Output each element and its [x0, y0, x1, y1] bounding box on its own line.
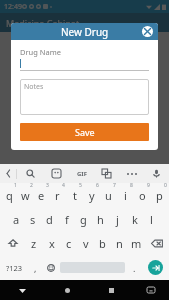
staticText: p	[156, 188, 163, 203]
staticText: 6	[96, 182, 99, 189]
staticText: v	[83, 236, 89, 251]
button[interactable]: n	[111, 231, 128, 255]
button[interactable]: p	[151, 183, 168, 207]
staticText: u	[105, 188, 112, 203]
button[interactable]: y	[83, 183, 100, 207]
staticText: 5	[79, 182, 82, 189]
staticText: New Drug	[61, 25, 109, 39]
button[interactable]: o	[134, 183, 151, 207]
button[interactable]: More options	[119, 164, 144, 183]
staticText: b	[99, 236, 106, 251]
button[interactable]: Translate	[94, 164, 119, 183]
button[interactable]: Close	[142, 26, 153, 37]
staticText: Save	[75, 126, 95, 138]
button[interactable]: Recents	[89, 280, 133, 300]
staticText: c	[66, 236, 72, 251]
button[interactable]: e	[33, 183, 49, 207]
staticText: .	[133, 262, 136, 274]
button[interactable]: Backspace	[145, 231, 168, 255]
staticText: 12:49	[4, 2, 22, 12]
staticText: r	[55, 188, 60, 203]
button[interactable]: x	[43, 231, 60, 255]
staticText: l	[150, 212, 153, 227]
staticText: g	[80, 212, 87, 227]
button[interactable]: c	[60, 231, 77, 255]
staticText: Medicine Cabinet	[6, 17, 80, 29]
button[interactable]: Stickers	[43, 164, 69, 183]
button[interactable]: f	[58, 207, 75, 231]
button[interactable]: Enter	[142, 255, 168, 280]
staticText: 4	[62, 182, 65, 189]
staticText: 9	[147, 182, 150, 189]
button[interactable]: h	[92, 207, 109, 231]
staticText: x	[49, 236, 55, 251]
staticText: 7	[113, 182, 116, 189]
staticText: k	[132, 212, 138, 227]
staticText: o	[139, 188, 146, 203]
button[interactable]: Shift	[1, 231, 25, 255]
button[interactable]: q	[1, 183, 17, 207]
staticText: GIF	[77, 170, 87, 178]
staticText: 3	[46, 182, 49, 189]
button[interactable]: GIF	[69, 164, 94, 183]
button[interactable]: Save	[20, 123, 149, 141]
staticText: j	[116, 212, 119, 227]
button[interactable]: Emoji	[43, 255, 58, 280]
button[interactable]: s	[24, 207, 41, 231]
staticText: e	[38, 188, 45, 203]
button[interactable]: z	[25, 231, 43, 255]
button[interactable]: v	[77, 231, 94, 255]
button[interactable]: ,	[28, 255, 43, 280]
button[interactable]: u	[100, 183, 117, 207]
button[interactable]: r	[49, 183, 66, 207]
staticText: ?123	[6, 263, 23, 273]
button[interactable]: Back	[0, 164, 16, 183]
button[interactable]: .	[127, 255, 142, 280]
staticText: i	[124, 188, 127, 203]
button[interactable]: Notes	[20, 79, 149, 115]
staticText: d	[46, 212, 53, 227]
button[interactable]: Voice input	[144, 164, 169, 183]
button[interactable]: Hide keyboard	[0, 280, 45, 300]
staticText: z	[31, 236, 37, 251]
staticText: h	[97, 212, 104, 227]
staticText: 1	[14, 182, 17, 189]
staticText: 0	[164, 182, 167, 189]
button[interactable]: a	[8, 207, 24, 231]
button[interactable]: w	[17, 183, 33, 207]
button[interactable]: g	[75, 207, 92, 231]
staticText: m	[131, 236, 142, 251]
staticText: f	[65, 212, 69, 227]
staticText: Drug Name	[20, 47, 61, 57]
staticText: 2	[30, 182, 33, 189]
button[interactable]: k	[126, 207, 143, 231]
button[interactable]: t	[66, 183, 83, 207]
staticText: a	[13, 212, 20, 227]
button[interactable]: Switch keyboard	[133, 280, 169, 300]
staticText: Notes	[24, 82, 44, 92]
button[interactable]: b	[94, 231, 111, 255]
staticText: 8	[130, 182, 133, 189]
staticText: n	[116, 236, 123, 251]
button[interactable]: Home	[45, 280, 89, 300]
button[interactable]: Search	[17, 164, 43, 183]
button[interactable]: m	[128, 231, 145, 255]
staticText: y	[89, 188, 95, 203]
staticText: ,	[34, 262, 37, 274]
button[interactable]	[20, 57, 149, 70]
button[interactable]: l	[143, 207, 160, 231]
staticText: w	[21, 188, 30, 203]
staticText: t	[73, 188, 77, 203]
staticText: q	[6, 188, 13, 203]
button[interactable]: d	[41, 207, 58, 231]
button[interactable]: j	[109, 207, 126, 231]
button[interactable]: i	[117, 183, 134, 207]
staticText: s	[30, 212, 36, 227]
button[interactable]: ?123	[1, 255, 28, 280]
